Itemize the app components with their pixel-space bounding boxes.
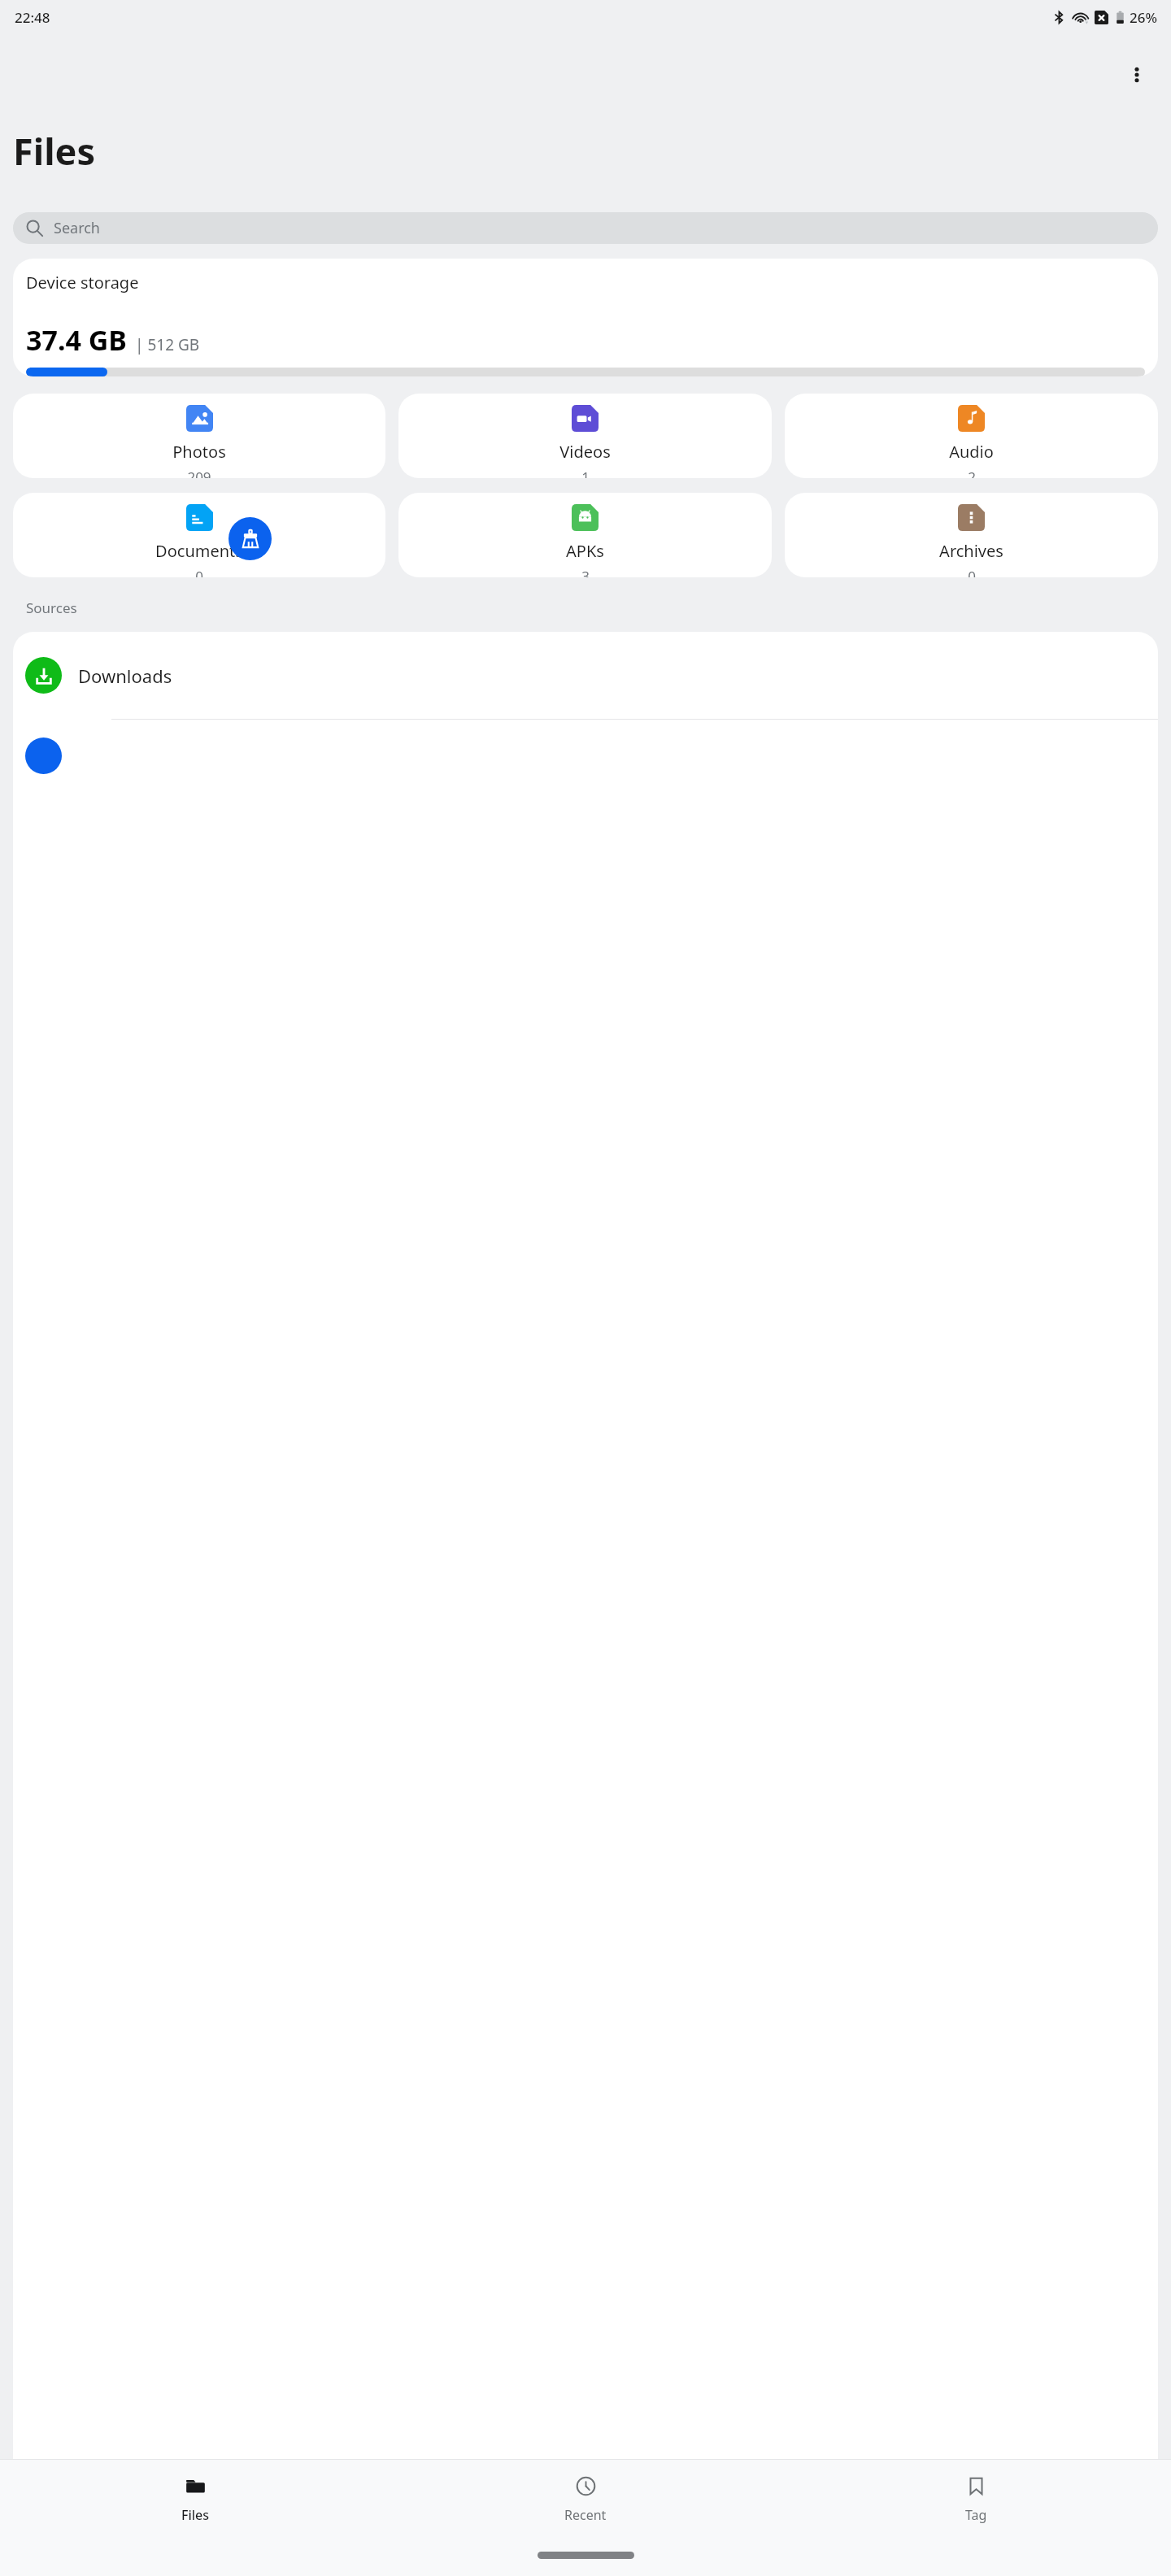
staticText: 37.4 GB bbox=[26, 321, 127, 359]
staticText: 0 bbox=[195, 567, 203, 577]
staticText: Files bbox=[13, 126, 96, 176]
staticText: Videos bbox=[559, 441, 611, 463]
staticText: 22:48 bbox=[15, 8, 50, 27]
staticText: APKs bbox=[566, 540, 604, 562]
button[interactable]: Files bbox=[0, 2460, 390, 2524]
staticText: Archives bbox=[939, 540, 1003, 562]
staticText: Audio bbox=[949, 441, 994, 463]
staticText: 3 bbox=[581, 567, 590, 577]
staticText: Photos bbox=[172, 441, 226, 463]
button[interactable]: Recent bbox=[390, 2460, 781, 2524]
button[interactable]: Clean up storage bbox=[229, 517, 272, 560]
staticText: 1 bbox=[581, 468, 590, 478]
staticText: Recent bbox=[564, 2506, 607, 2524]
button[interactable]: Archives bbox=[785, 493, 1158, 577]
staticText: Search bbox=[54, 218, 100, 238]
staticText: 209 bbox=[187, 468, 211, 478]
button[interactable]: APKs bbox=[398, 493, 772, 577]
button[interactable]: Downloads bbox=[13, 632, 1158, 719]
staticText: | 512 GB bbox=[135, 334, 200, 355]
button[interactable]: Search bbox=[13, 212, 1158, 244]
button[interactable]: Photos bbox=[13, 394, 385, 478]
staticText: Device storage bbox=[26, 272, 139, 294]
staticText: Documents bbox=[155, 540, 243, 562]
staticText: Sources bbox=[26, 598, 77, 617]
staticText: Files bbox=[181, 2506, 210, 2524]
button[interactable]: Audio bbox=[785, 394, 1158, 478]
button[interactable]: Documents bbox=[13, 493, 385, 577]
staticText: 2 bbox=[968, 468, 976, 478]
button[interactable]: Device storage bbox=[13, 259, 1158, 376]
button[interactable]: Videos bbox=[398, 394, 772, 478]
staticText: 26% bbox=[1130, 8, 1157, 27]
button[interactable]: More options bbox=[1117, 55, 1156, 94]
staticText: Downloads bbox=[78, 664, 172, 688]
button[interactable]: Tag bbox=[781, 2460, 1171, 2524]
staticText: 0 bbox=[968, 567, 976, 577]
staticText: Tag bbox=[965, 2506, 987, 2524]
